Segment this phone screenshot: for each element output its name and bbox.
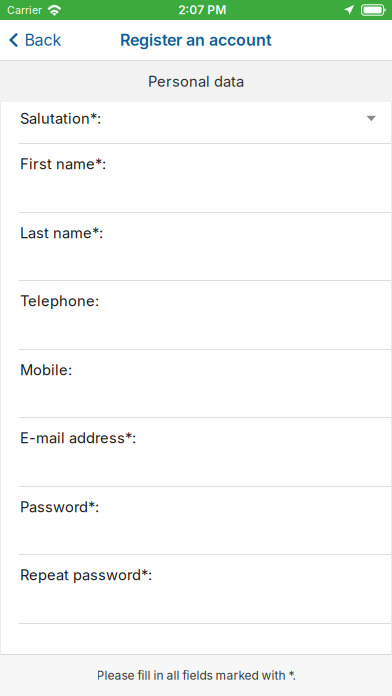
staticText: Password*: xyxy=(20,498,99,516)
staticText: Salutation*: xyxy=(20,110,101,127)
button[interactable]: Repeat password*: xyxy=(1,555,391,623)
staticText: 2:07 PM xyxy=(178,3,226,17)
staticText: E-mail address*: xyxy=(20,429,136,447)
button[interactable]: E-mail address*: xyxy=(1,418,391,486)
staticText: Personal data xyxy=(148,73,244,90)
button[interactable]: Telephone: xyxy=(1,281,391,349)
staticText: Telephone: xyxy=(20,292,99,310)
staticText: First name*: xyxy=(20,155,106,173)
button[interactable]: Password*: xyxy=(1,487,391,554)
staticText: Carrier xyxy=(7,3,42,16)
staticText: Please fill in all fields marked with *. xyxy=(96,668,295,683)
button[interactable]: Back xyxy=(0,20,74,60)
staticText: Last name*: xyxy=(20,224,103,242)
button[interactable]: Salutation*: xyxy=(1,102,391,143)
staticText: Mobile: xyxy=(20,361,72,379)
button[interactable]: First name*: xyxy=(1,144,391,212)
staticText: Back xyxy=(25,30,62,50)
button[interactable]: Mobile: xyxy=(1,350,391,417)
staticText: Repeat password*: xyxy=(20,566,152,584)
staticText: Register an account xyxy=(120,30,272,50)
button[interactable]: Last name*: xyxy=(1,213,391,280)
